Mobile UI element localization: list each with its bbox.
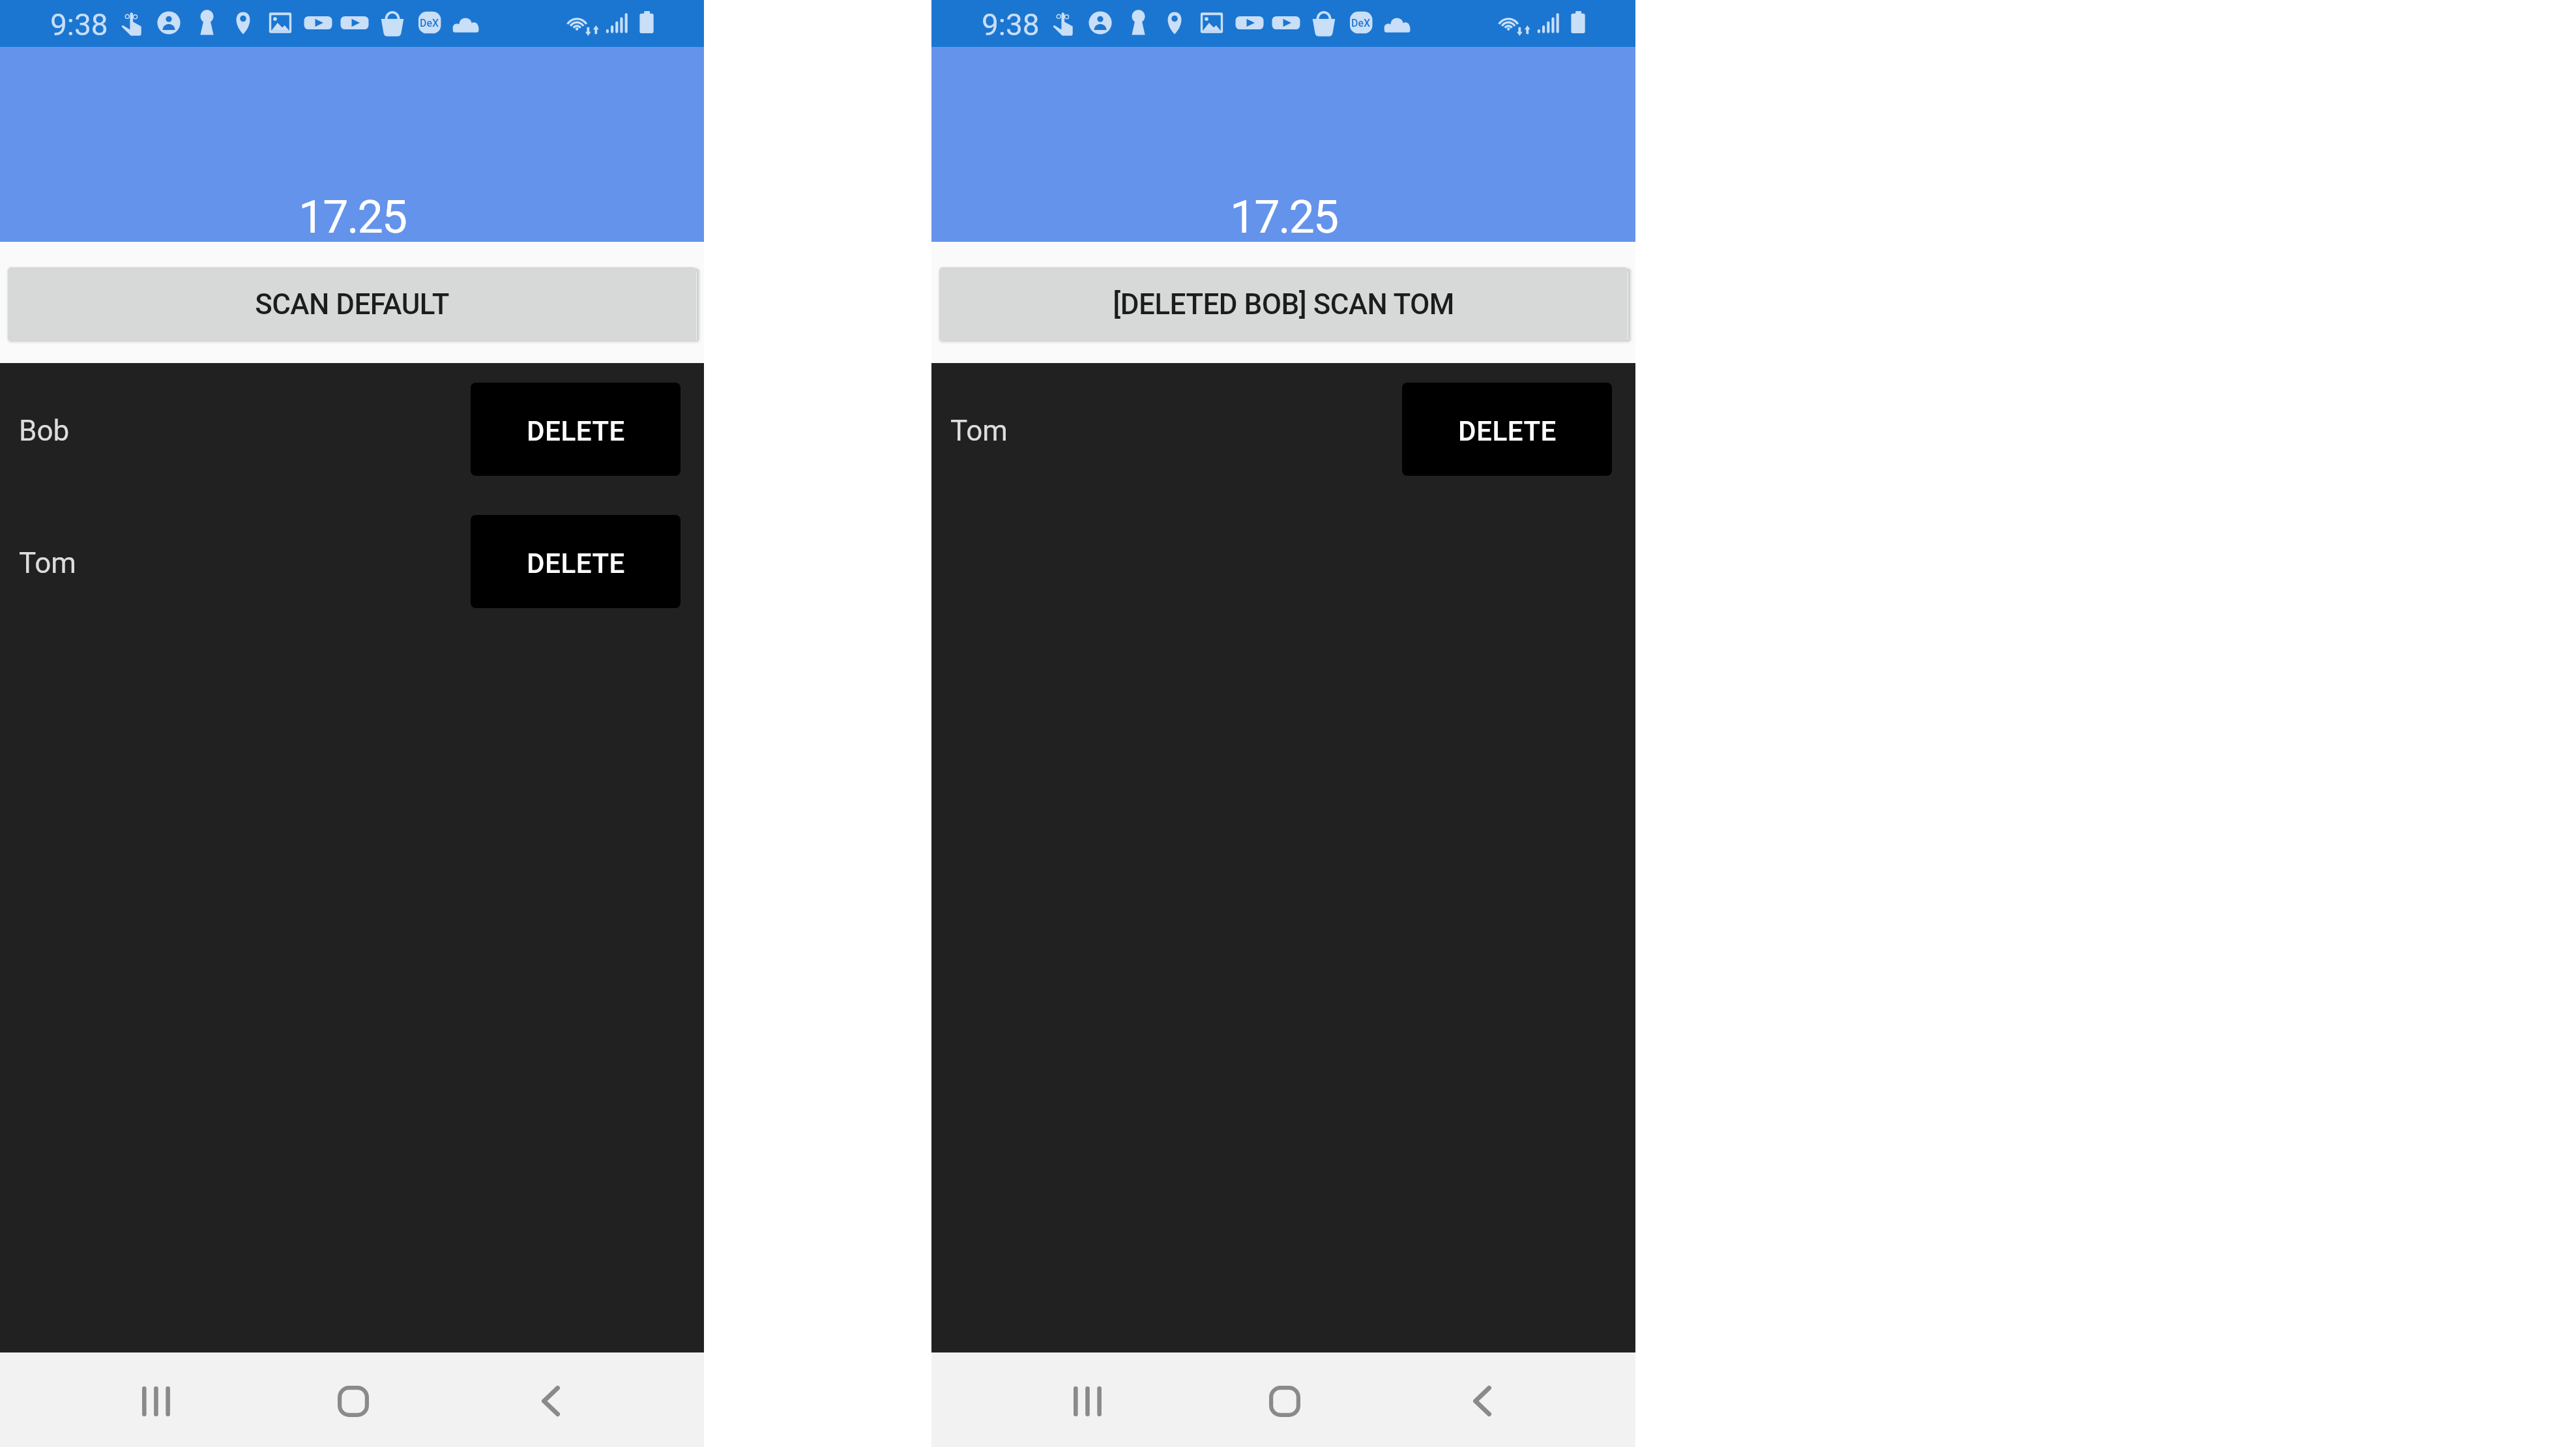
staticText: 9:38 — [982, 7, 1040, 42]
staticText: DELETE — [1458, 415, 1557, 447]
button[interactable]: SCAN DEFAULT — [8, 267, 696, 341]
button[interactable]: DELETE — [471, 383, 681, 476]
button[interactable]: [DELETED BOB] SCAN TOM — [939, 267, 1628, 341]
staticText: DELETE — [527, 548, 625, 579]
button[interactable]: Recent apps — [1029, 1362, 1147, 1440]
staticText: SCAN DEFAULT — [255, 287, 449, 321]
button[interactable]: Back — [1424, 1362, 1541, 1440]
staticText: DELETE — [527, 415, 625, 447]
staticText: Bob — [19, 414, 70, 448]
button[interactable]: Home — [1226, 1362, 1343, 1440]
button[interactable]: DELETE — [1402, 383, 1612, 476]
staticText: 9:38 — [50, 7, 108, 42]
button[interactable]: DELETE — [471, 515, 681, 608]
staticText: DeX — [1351, 17, 1371, 29]
staticText: DeX — [420, 17, 439, 29]
staticText: 17.25 — [299, 190, 406, 244]
button[interactable]: Back — [492, 1362, 609, 1440]
button[interactable]: Home — [295, 1362, 412, 1440]
staticText: 17.25 — [1230, 190, 1338, 244]
button[interactable]: Recent apps — [98, 1362, 215, 1440]
staticText: Tom — [19, 546, 76, 580]
staticText: Tom — [950, 414, 1008, 448]
staticText: [DELETED BOB] SCAN TOM — [1113, 287, 1454, 321]
